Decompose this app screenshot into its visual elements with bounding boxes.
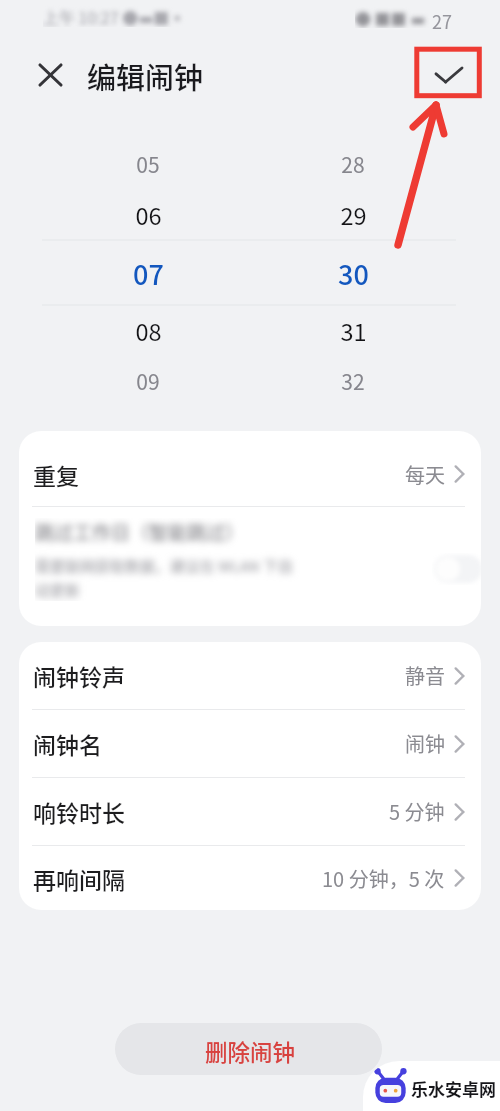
staticText: 32 xyxy=(341,366,365,390)
staticText: 乐水安卓网 xyxy=(411,1076,496,1101)
staticText: 27 xyxy=(432,8,452,34)
staticText: 09 xyxy=(136,366,160,390)
button[interactable]: Confirm xyxy=(417,52,481,98)
staticText: 29 xyxy=(340,198,367,225)
staticText: 06 xyxy=(135,198,162,225)
staticText: 闹钟铃声 xyxy=(33,659,125,692)
staticText: 上午 10:27 ●▬■▪ xyxy=(43,5,186,27)
staticText: ● ■■ ▬ xyxy=(355,6,426,28)
staticText: 28 xyxy=(341,149,365,173)
staticText: 删除闹钟 xyxy=(205,1035,296,1068)
staticText: 闹钟 xyxy=(405,729,445,758)
staticText: 再响间隔 xyxy=(33,862,125,895)
staticText: 05 xyxy=(136,149,160,173)
button[interactable]: 重复 xyxy=(19,431,481,506)
staticText: 5 分钟 xyxy=(389,797,445,826)
button[interactable]: Close xyxy=(30,55,70,95)
staticText: 静音 xyxy=(405,661,445,690)
staticText: 响铃时长 xyxy=(33,795,125,828)
staticText: 跳过工作日（智能跳过） xyxy=(35,518,245,546)
button[interactable]: 再响间隔 xyxy=(19,846,481,910)
staticText: 每天 xyxy=(405,460,445,489)
button[interactable]: Toggle xyxy=(432,553,481,585)
staticText: 需要联网获取数据，建议在 WLAN 下自动更新 xyxy=(35,555,301,601)
staticText: 编辑闹钟 xyxy=(87,55,204,97)
staticText: 30 xyxy=(338,254,369,285)
staticText: 08 xyxy=(135,314,162,341)
staticText: 闹钟名 xyxy=(33,727,102,760)
button[interactable]: 响铃时长 xyxy=(19,778,481,845)
button[interactable]: 闹钟铃声 xyxy=(19,642,481,709)
staticText: 07 xyxy=(133,254,164,285)
staticText: 重复 xyxy=(33,458,79,491)
staticText: 10 分钟，5 次 xyxy=(322,864,445,893)
button[interactable]: 删除闹钟 xyxy=(115,1023,382,1075)
staticText: 31 xyxy=(340,314,367,341)
button[interactable]: 跳过工作日（智能跳过） xyxy=(19,507,481,626)
button[interactable]: 闹钟名 xyxy=(19,710,481,777)
